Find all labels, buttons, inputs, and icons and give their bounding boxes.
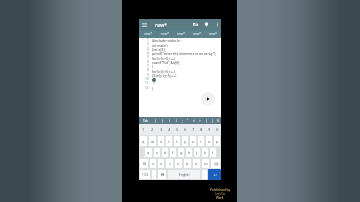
button[interactable]: new* (205, 30, 221, 38)
staticText: a (147, 150, 150, 155)
button[interactable]: y (182, 136, 188, 146)
button[interactable]: Run program (201, 92, 215, 106)
staticText: Published by (210, 187, 231, 192)
button[interactable]: m (202, 159, 209, 168)
staticText: 7 (147, 64, 149, 68)
button[interactable]: 2 (148, 124, 157, 135)
button[interactable]: Tab (139, 117, 152, 124)
staticText: ; (182, 119, 183, 123)
button[interactable]: More options (213, 19, 222, 30)
button[interactable]: Change language (158, 170, 166, 179)
staticText: e (160, 139, 163, 144)
button[interactable]: t (174, 136, 180, 146)
staticText: ?123 (142, 173, 149, 177)
button[interactable]: o (206, 136, 212, 146)
staticText: new* (155, 22, 167, 28)
staticText: { for(j=i;j<5;j++) (152, 73, 177, 78)
button[interactable]: 6 (181, 124, 189, 135)
staticText: x (160, 161, 163, 166)
button[interactable]: 9 (205, 124, 213, 135)
button[interactable]: ( (166, 117, 173, 124)
staticText: b (186, 161, 189, 166)
staticText: & (217, 119, 220, 123)
button[interactable]: ) (173, 117, 179, 124)
button[interactable]: n (193, 159, 200, 168)
button[interactable]: 3 (157, 124, 165, 135)
button[interactable]: b (184, 159, 191, 168)
staticText: new* (144, 32, 152, 36)
button[interactable]: f (170, 148, 176, 157)
button[interactable]: i (198, 136, 204, 146)
staticText: new* (193, 32, 201, 36)
button[interactable]: > (197, 117, 203, 124)
staticText: 12 (145, 86, 149, 90)
button[interactable]: x (158, 159, 164, 168)
button[interactable]: w (149, 136, 156, 146)
button[interactable]: Enter (208, 169, 221, 180)
button[interactable]: 0 (213, 124, 221, 135)
button[interactable]: English (168, 170, 200, 179)
button[interactable]: . (202, 170, 207, 179)
staticText: 6 (147, 60, 149, 64)
staticText: 6 (184, 127, 187, 133)
staticText: . (204, 172, 206, 177)
button[interactable]: p (214, 136, 220, 146)
staticText: m (204, 161, 208, 166)
button[interactable]: [ (203, 117, 209, 124)
button[interactable]: new* (173, 30, 189, 38)
staticText: q (142, 139, 145, 144)
staticText: new* (177, 32, 185, 36)
button[interactable]: Hints (202, 19, 211, 30)
staticText: 11 (145, 81, 149, 85)
staticText: { (155, 119, 157, 123)
button[interactable]: Navigation menu (140, 19, 149, 30)
button[interactable]: h (186, 148, 192, 157)
staticText: 5 (147, 55, 149, 59)
button[interactable]: { (152, 117, 159, 124)
button[interactable]: d (162, 148, 168, 157)
staticText: z (152, 161, 154, 166)
button[interactable]: new* (156, 30, 173, 38)
staticText: l (212, 150, 214, 155)
button[interactable]: l (210, 148, 216, 157)
button[interactable]: 1 (139, 124, 148, 135)
staticText: g (180, 150, 183, 155)
button[interactable]: 4 (165, 124, 173, 135)
button[interactable]: e (158, 136, 164, 146)
button[interactable]: ?123 (140, 170, 150, 179)
staticText: 3 (160, 127, 163, 133)
button[interactable]: new* (139, 30, 156, 38)
button[interactable]: j (194, 148, 200, 157)
button[interactable]: 7 (189, 124, 197, 135)
button[interactable]: v (175, 159, 182, 168)
staticText: ( (169, 119, 170, 123)
button[interactable]: } (159, 117, 166, 124)
button[interactable]: , (152, 170, 156, 179)
button[interactable]: r (166, 136, 172, 146)
button[interactable]: 8 (197, 124, 205, 135)
button[interactable]: c (166, 159, 173, 168)
button[interactable]: ; (179, 117, 185, 124)
button[interactable]: a (145, 148, 152, 157)
button[interactable]: & (215, 117, 221, 124)
button[interactable]: k (202, 148, 208, 157)
button[interactable]: < (191, 117, 197, 124)
button[interactable]: Open file (191, 19, 200, 30)
button[interactable]: ] (209, 117, 215, 124)
button[interactable]: g (178, 148, 184, 157)
button[interactable]: s (154, 148, 160, 157)
staticText: h (188, 150, 191, 155)
button[interactable]: u (190, 136, 196, 146)
button[interactable]: new* (189, 30, 205, 38)
button[interactable]: q (140, 136, 147, 146)
staticText: o (208, 139, 211, 144)
button[interactable]: z (150, 159, 156, 168)
staticText: s (156, 150, 158, 155)
button[interactable]: Backspace (211, 159, 220, 168)
button[interactable]: " (185, 117, 191, 124)
staticText: v (177, 161, 180, 166)
staticText: int main() (152, 43, 168, 48)
staticText: d (164, 150, 167, 155)
button[interactable]: 5 (173, 124, 181, 135)
button[interactable]: Shift (140, 159, 148, 168)
